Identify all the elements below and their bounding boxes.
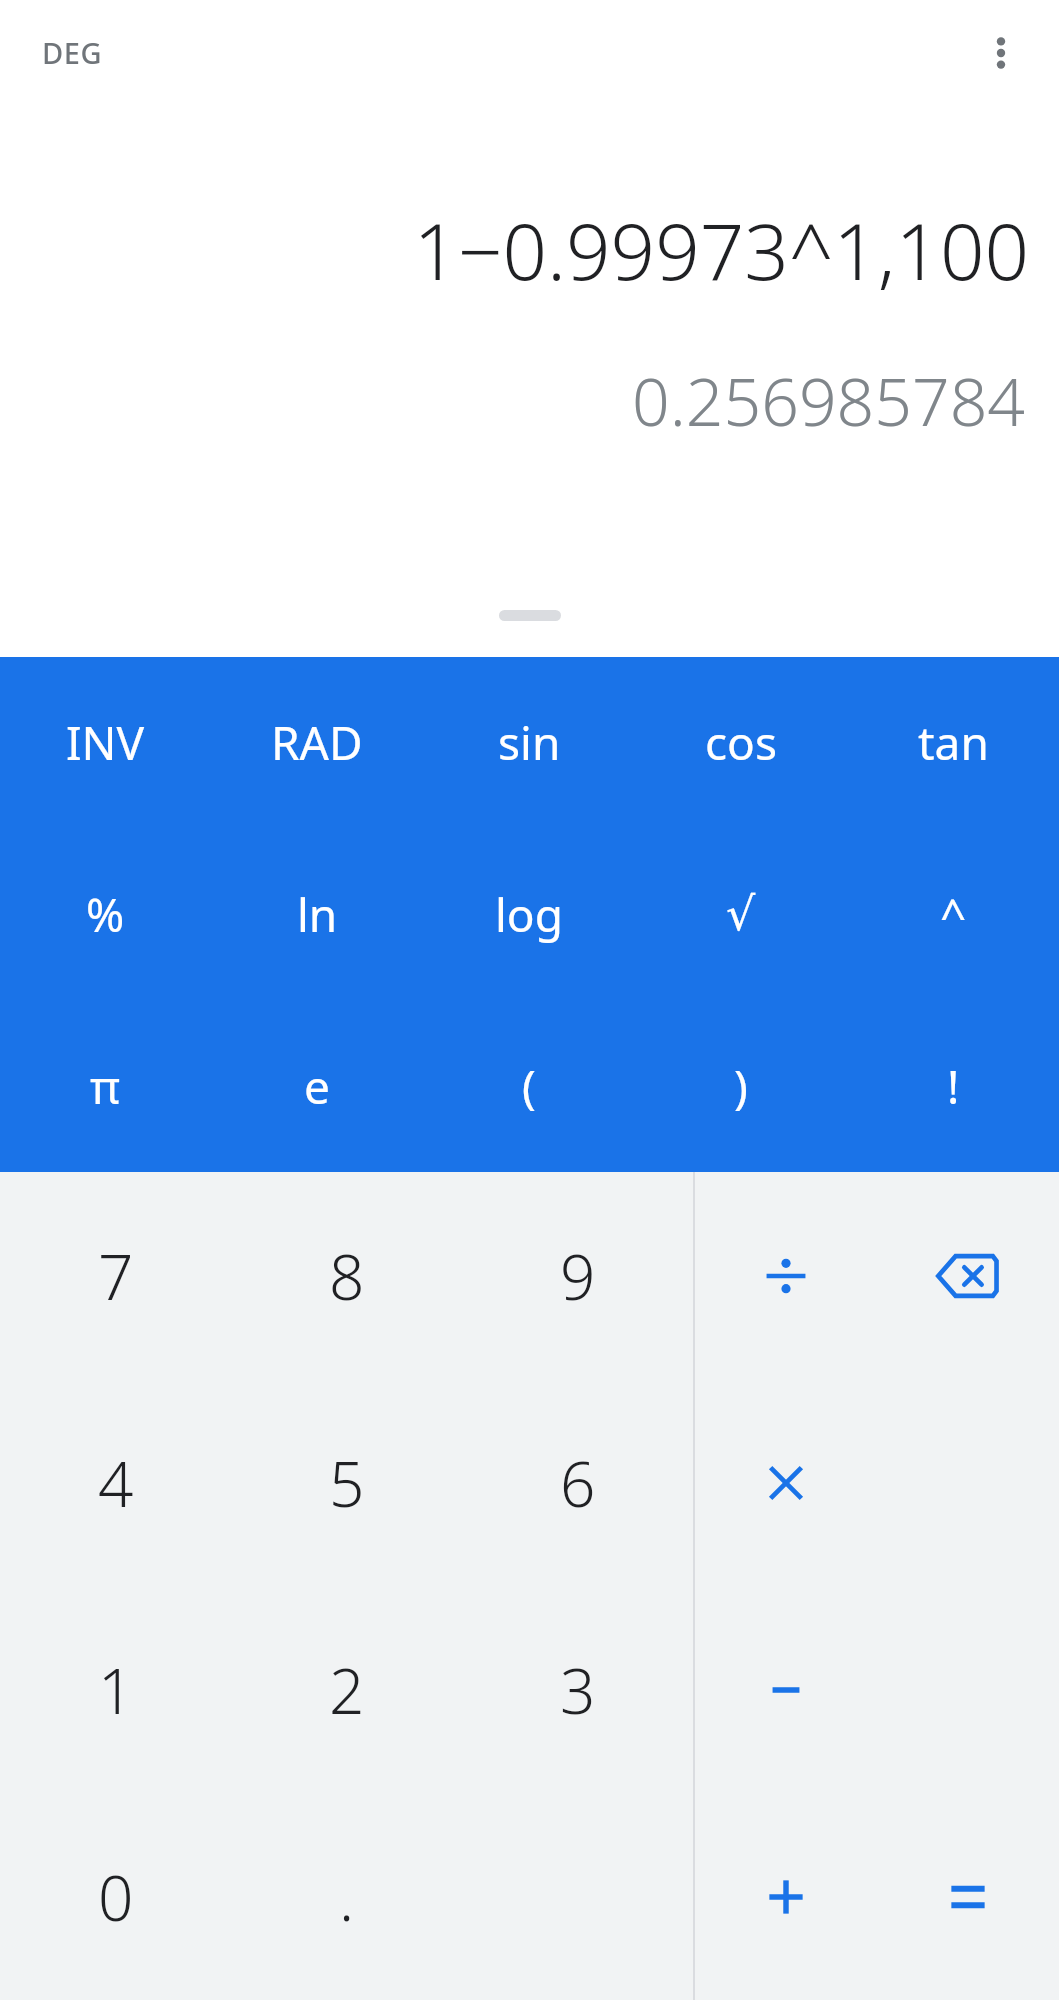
button[interactable]: tan <box>847 657 1059 828</box>
staticText: 7 <box>98 1234 134 1318</box>
button[interactable]: . <box>231 1793 462 2000</box>
button[interactable]: 0 <box>0 1793 231 2000</box>
button[interactable]: Plus <box>695 1793 877 2000</box>
button[interactable]: % <box>0 828 211 1000</box>
button[interactable]: sin <box>423 657 635 828</box>
button[interactable]: 3 <box>462 1586 693 1793</box>
button[interactable]: 5 <box>231 1379 462 1586</box>
staticText: 6 <box>560 1441 596 1525</box>
staticText: 3 <box>560 1648 596 1732</box>
staticText: 4 <box>98 1441 134 1525</box>
staticText: 1−0.99973^1,100 <box>30 197 1029 303</box>
button[interactable]: Minus <box>695 1586 877 1793</box>
button[interactable]: 2 <box>231 1586 462 1793</box>
button[interactable]: log <box>423 828 635 1000</box>
button[interactable]: ! <box>847 1000 1059 1172</box>
button[interactable]: Equals <box>877 1793 1059 2000</box>
button[interactable]: Divide <box>695 1172 877 1379</box>
staticText: e <box>304 1055 330 1118</box>
button[interactable]: Backspace <box>877 1172 1059 1379</box>
button[interactable]: ( <box>423 1000 635 1172</box>
button[interactable]: 9 <box>462 1172 693 1379</box>
button[interactable]: e <box>211 1000 423 1172</box>
staticText: 9 <box>560 1234 596 1318</box>
button[interactable]: ) <box>635 1000 847 1172</box>
button[interactable]: RAD <box>211 657 423 828</box>
button[interactable]: 6 <box>462 1379 693 1586</box>
button[interactable]: DEG <box>36 27 109 78</box>
staticText: log <box>495 883 563 946</box>
staticText: INV <box>66 711 145 774</box>
staticText: cos <box>705 711 777 774</box>
button[interactable]: cos <box>635 657 847 828</box>
button[interactable]: 1 <box>0 1586 231 1793</box>
staticText: 2 <box>329 1648 365 1732</box>
staticText: ( <box>522 1055 536 1118</box>
staticText: DEG <box>42 33 103 72</box>
staticText: sin <box>498 711 561 774</box>
staticText: RAD <box>271 711 363 774</box>
button[interactable]: π <box>0 1000 211 1172</box>
button[interactable]: 4 <box>0 1379 231 1586</box>
button[interactable]: 7 <box>0 1172 231 1379</box>
button[interactable]: Multiply <box>695 1379 877 1586</box>
staticText: 8 <box>329 1234 365 1318</box>
staticText: 1 <box>98 1648 134 1732</box>
staticText: 5 <box>329 1441 365 1525</box>
staticText: ! <box>947 1055 960 1118</box>
staticText: π <box>90 1055 121 1118</box>
button[interactable]: √ <box>635 828 847 1000</box>
staticText: ) <box>734 1055 748 1118</box>
staticText: . <box>339 1855 355 1939</box>
button[interactable]: 8 <box>231 1172 462 1379</box>
staticText: 0.256985784 <box>34 355 1025 445</box>
staticText: ^ <box>940 883 967 946</box>
button[interactable]: ln <box>211 828 423 1000</box>
staticText: tan <box>918 711 989 774</box>
button[interactable]: ^ <box>847 828 1059 1000</box>
staticText: 0 <box>98 1855 134 1939</box>
button[interactable]: More options <box>963 15 1039 91</box>
staticText: ln <box>297 883 338 946</box>
staticText: √ <box>726 887 756 941</box>
button[interactable]: INV <box>0 657 211 828</box>
staticText: % <box>86 883 125 946</box>
button[interactable]: Drag handle <box>0 593 1059 637</box>
